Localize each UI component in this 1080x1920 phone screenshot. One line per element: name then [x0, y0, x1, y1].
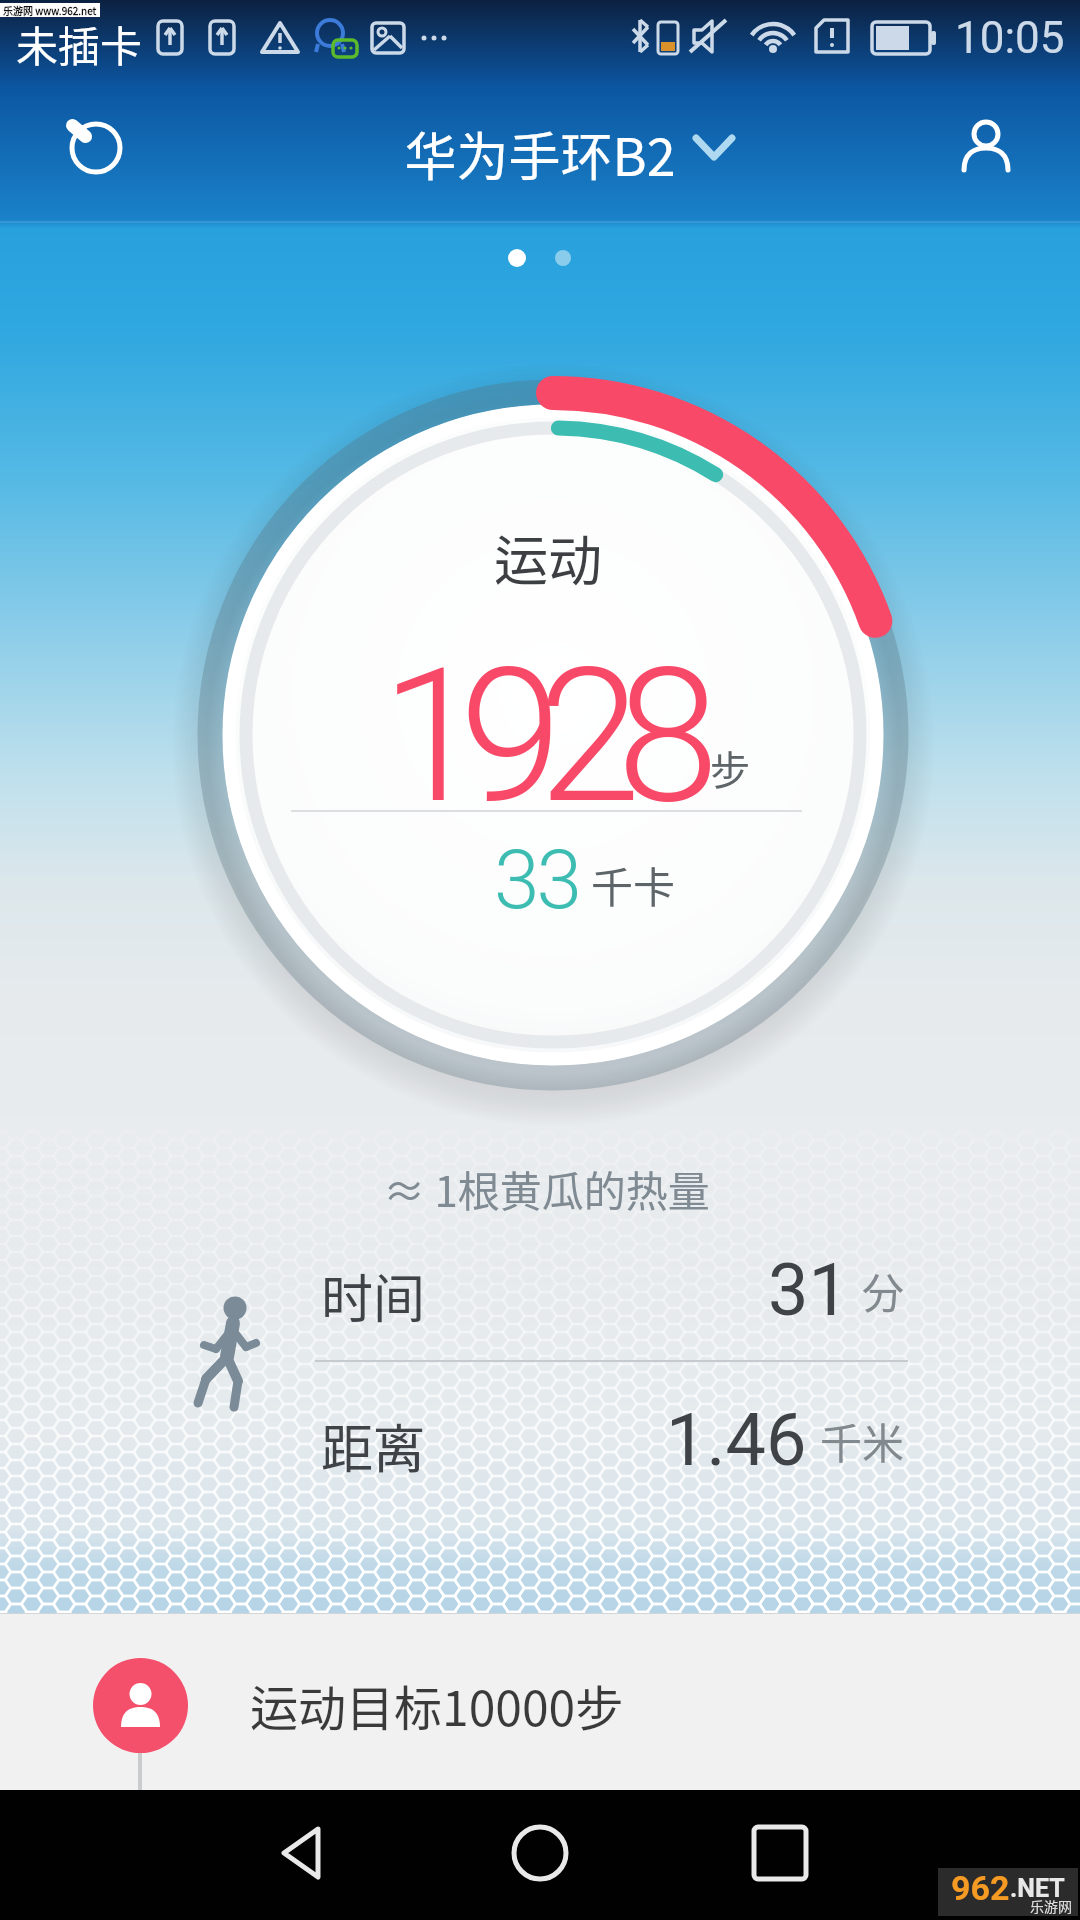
button[interactable] [480, 1800, 600, 1910]
staticText: .NET [1010, 1874, 1065, 1903]
staticText: 乐游网 [1030, 1896, 1072, 1916]
button[interactable]: 运动目标10000步 [0, 1630, 1080, 1780]
staticText: 千米 [820, 1410, 905, 1471]
staticText: 10:05 [955, 12, 1065, 64]
staticText: 步 [710, 739, 750, 797]
staticText: ≈ 1根黄瓜的热量 [383, 1158, 710, 1219]
staticText: 时间 [321, 1258, 426, 1333]
button[interactable] [720, 1800, 840, 1910]
button[interactable] [58, 108, 134, 184]
staticText: 华为手环B2 [404, 116, 676, 191]
staticText: 千卡 [591, 854, 676, 915]
staticText: 运动目标10000步 [250, 1670, 624, 1740]
staticText: 分 [862, 1260, 905, 1321]
staticText: 33 [494, 832, 579, 928]
staticText: 962 [951, 1868, 1010, 1908]
staticText: 距离 [321, 1408, 426, 1483]
staticText: 31 [768, 1248, 849, 1332]
button[interactable] [244, 1800, 364, 1910]
button[interactable] [948, 108, 1024, 184]
staticText: 乐游网 www.962.net [3, 3, 97, 17]
staticText: 未插卡 [16, 13, 143, 74]
button[interactable] [330, 100, 770, 200]
staticText: 1.46 [666, 1398, 807, 1482]
staticText: 1928 [381, 628, 696, 845]
staticText: 运动 [494, 518, 602, 596]
